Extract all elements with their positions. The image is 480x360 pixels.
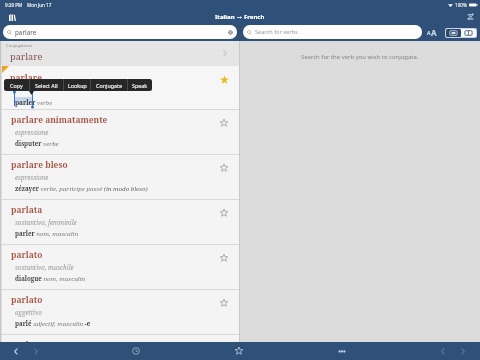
button[interactable]: parlato (0, 289, 239, 334)
staticText: Copy (10, 82, 23, 89)
button[interactable]: Next result (458, 346, 468, 356)
button[interactable]: parlare bleso (0, 154, 239, 199)
button[interactable]: parlata (0, 199, 239, 244)
staticText: parlé adjectif, masculin -e (15, 319, 91, 327)
button[interactable]: More (337, 346, 347, 356)
staticText: Italian (215, 13, 235, 21)
staticText: Search for verbs (255, 28, 298, 36)
button[interactable]: Select All (30, 79, 63, 91)
staticText: 100% (455, 2, 467, 8)
staticText: parlare (10, 50, 43, 63)
staticText: Lookup (68, 82, 87, 89)
button[interactable]: Split pane (461, 29, 476, 37)
staticText: A (431, 27, 437, 37)
staticText: sostantivo, femminile (15, 218, 77, 226)
button[interactable]: parlata (0, 334, 239, 342)
button[interactable]: Conjugations (0, 41, 239, 66)
staticText: parler nom, masculin (15, 229, 79, 237)
button[interactable]: Lookup (64, 79, 90, 91)
button[interactable]: Add to favorites (216, 160, 232, 176)
button[interactable]: Add to favorites (216, 250, 232, 266)
staticText: zézayer verbe, participe passé (in modo … (15, 184, 148, 192)
button[interactable]: Search for verbs (243, 25, 422, 39)
button[interactable]: Back (11, 346, 21, 356)
staticText: French (244, 13, 265, 21)
button[interactable]: Add to favorites (216, 295, 232, 311)
button[interactable]: Library (4, 10, 20, 24)
staticText: aggettivo (15, 308, 42, 316)
staticText: parlare bleso (11, 159, 68, 170)
staticText: A (427, 30, 431, 37)
button[interactable]: parlare animatamente (0, 109, 239, 154)
staticText: Select All (35, 82, 58, 89)
button[interactable]: parlato (0, 244, 239, 289)
staticText: parlata (11, 339, 43, 347)
button[interactable]: Forward (31, 346, 41, 356)
button[interactable]: Single pane (446, 29, 461, 37)
staticText: parler (15, 98, 36, 107)
button[interactable]: History (131, 346, 141, 356)
staticText: parlare (10, 72, 43, 83)
button[interactable]: Favorited (216, 72, 232, 88)
button[interactable]: Text size (427, 27, 437, 37)
staticText: espressione (15, 128, 49, 136)
button[interactable]: parlare (3, 25, 237, 39)
staticText: parlato (11, 294, 43, 305)
staticText: Mon Jun 17 (27, 2, 52, 8)
staticText: sostantivo, maschile (15, 263, 74, 271)
staticText: Speak (132, 82, 148, 89)
staticText: espressione (15, 173, 49, 181)
button[interactable]: Swap languages (463, 10, 477, 24)
staticText: disputer verbe (15, 139, 59, 147)
staticText: 9:20 PM (5, 2, 23, 8)
staticText: dialogue nom, masculin (15, 274, 86, 282)
staticText: parlato (11, 249, 43, 260)
button[interactable]: Conjugate (91, 79, 127, 91)
button[interactable]: Favorites (234, 346, 244, 356)
button[interactable]: Copy (4, 79, 29, 91)
button[interactable]: Previous result (438, 346, 448, 356)
button[interactable]: Add to favorites (216, 205, 232, 221)
staticText: verbe (37, 99, 53, 107)
staticText: Search for the verb you wish to conjugat… (301, 53, 419, 61)
staticText: parlata (11, 204, 43, 215)
button[interactable]: Speak (128, 79, 152, 91)
button[interactable]: Add to favorites (216, 115, 232, 131)
staticText: parlare (15, 28, 37, 37)
staticText: Conjugations (6, 43, 33, 49)
staticText: Conjugate (96, 82, 123, 89)
staticText: parlare animatamente (11, 114, 108, 125)
